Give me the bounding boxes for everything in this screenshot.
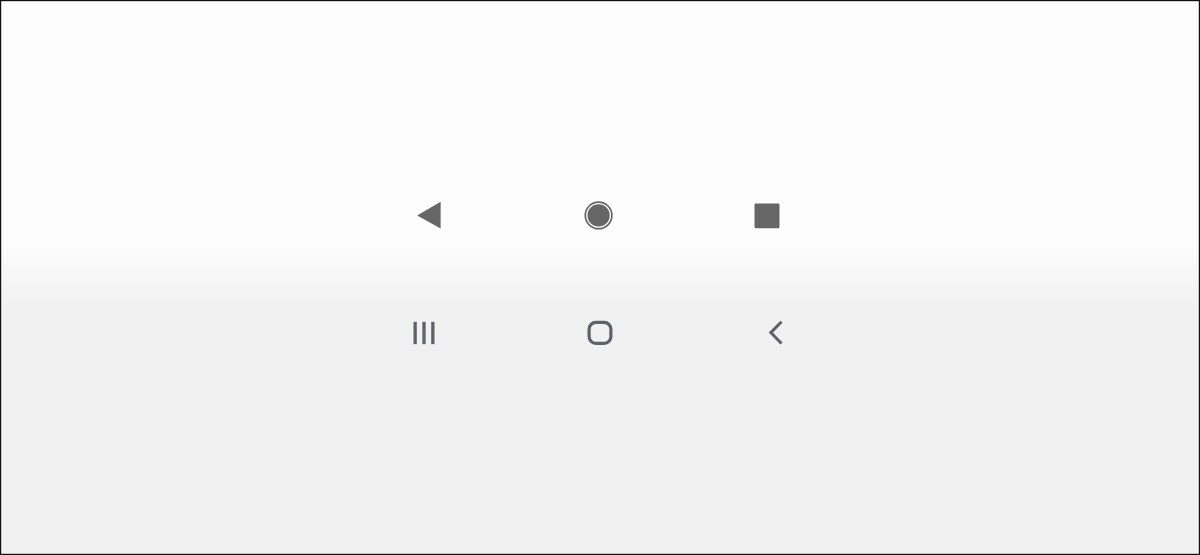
button[interactable]: Back <box>744 303 804 363</box>
button[interactable]: Home <box>570 303 630 363</box>
button[interactable]: Recent apps <box>394 303 454 363</box>
button[interactable]: Home <box>569 185 629 245</box>
button[interactable]: Recent apps <box>737 185 797 245</box>
button[interactable]: Back <box>399 185 459 245</box>
